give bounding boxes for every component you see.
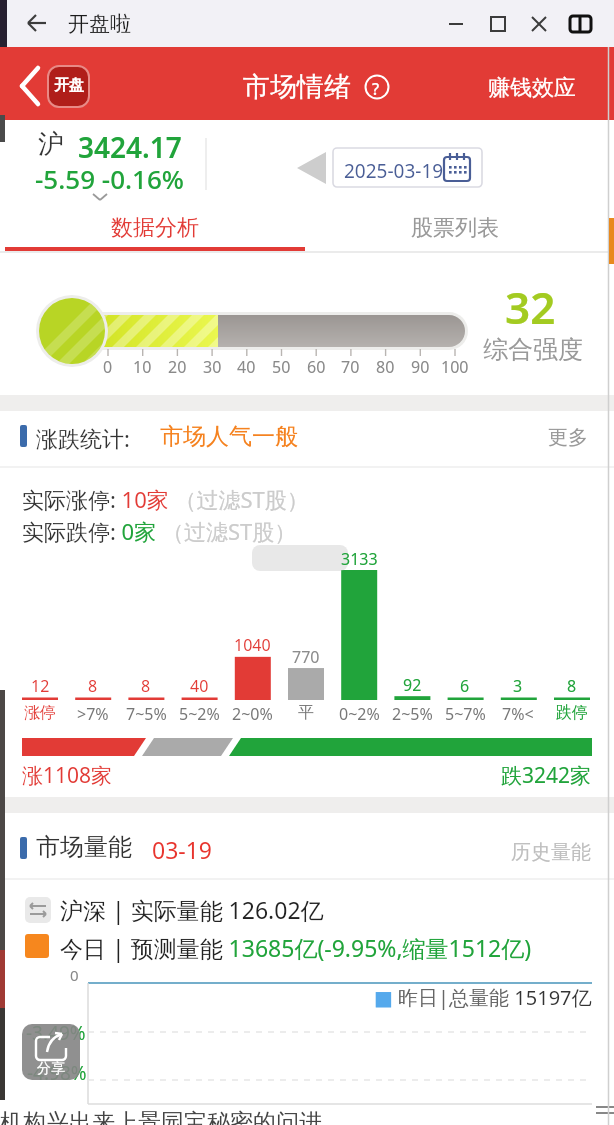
staticText: 涨跌统计: xyxy=(36,423,130,453)
staticText: 跌停 xyxy=(556,703,588,723)
staticText: 市场人气一般 xyxy=(160,422,298,451)
staticText: 40 xyxy=(237,356,256,378)
staticText: 770 xyxy=(292,646,320,668)
staticText: 3 xyxy=(513,675,523,697)
staticText: 市场情绪 xyxy=(243,70,351,104)
staticText: 0 xyxy=(103,356,113,378)
staticText: 1040 xyxy=(234,634,271,656)
staticText: 7%< xyxy=(502,703,534,725)
button[interactable] xyxy=(20,8,56,40)
staticText: 6 xyxy=(460,675,470,697)
button[interactable] xyxy=(290,145,330,190)
staticText: 实际涨停: 10家 （过滤ST股） xyxy=(22,484,309,514)
button[interactable] xyxy=(0,205,307,252)
staticText: 2025-03-19 xyxy=(344,158,444,184)
staticText: 数据分析 xyxy=(111,214,199,242)
staticText: 开盘 xyxy=(54,76,84,95)
staticText: 40 xyxy=(190,675,209,697)
button[interactable] xyxy=(22,1022,78,1082)
staticText: 开盘啦 xyxy=(68,11,131,37)
staticText: ■ 昨日|总量能 15197亿 xyxy=(374,984,592,1011)
staticText: 7~5% xyxy=(126,703,167,725)
button[interactable]: 历史量能 xyxy=(511,840,591,865)
staticText: 50 xyxy=(272,356,291,378)
staticText: 2~0% xyxy=(232,703,273,725)
staticText: >7% xyxy=(77,703,109,725)
staticText: 沪 xyxy=(38,128,64,161)
staticText: 平 xyxy=(298,703,314,723)
staticText: 80 xyxy=(376,356,395,378)
staticText: 涨停 xyxy=(24,703,56,723)
staticText: 综合强度 xyxy=(483,334,583,365)
staticText: 5~7% xyxy=(445,703,486,725)
staticText: 0 xyxy=(70,965,79,985)
button[interactable]: 分享 xyxy=(22,1024,80,1080)
staticText: 8 xyxy=(567,675,577,697)
staticText: 3424.17 xyxy=(78,128,182,166)
staticText: 70 xyxy=(341,356,360,378)
staticText: 32 xyxy=(505,277,556,337)
staticText: 20 xyxy=(168,356,187,378)
staticText: 股票列表 xyxy=(411,214,499,242)
button[interactable] xyxy=(333,148,482,187)
staticText: -3.49% xyxy=(26,1020,86,1046)
staticText: 5~2% xyxy=(179,703,220,725)
staticText: 涨1108家 xyxy=(22,761,113,790)
staticText: 60 xyxy=(307,356,326,378)
staticText: 市场量能 xyxy=(36,832,132,862)
staticText: 12 xyxy=(31,675,50,697)
staticText: 实际跌停: 0家 （过滤ST股） xyxy=(22,516,297,546)
staticText: 8 xyxy=(141,675,151,697)
staticText: 90 xyxy=(411,356,430,378)
staticText: 2~5% xyxy=(392,703,433,725)
staticText: 8 xyxy=(88,675,98,697)
staticText: 3133 xyxy=(341,548,378,570)
staticText: 92 xyxy=(403,674,422,696)
staticText: 赚钱效应 xyxy=(488,74,576,102)
staticText: -4.98% xyxy=(27,1060,87,1086)
staticText: 机构兴出来上景园宝秘密的问进 xyxy=(0,1108,322,1125)
staticText: 03-19 xyxy=(152,834,213,865)
staticText: 沪深 | 实际量能 126.02亿 xyxy=(60,894,324,925)
staticText: 10 xyxy=(133,356,152,378)
staticText: 今日 | 预测量能 13685亿(-9.95%,缩量1512亿) xyxy=(60,932,532,963)
button[interactable] xyxy=(14,60,94,110)
button[interactable] xyxy=(440,10,600,40)
staticText: 0~2% xyxy=(339,703,380,725)
button[interactable]: 更多 xyxy=(548,425,588,450)
staticText: 100 xyxy=(441,356,469,378)
staticText: ? xyxy=(372,78,380,100)
staticText: 分享 xyxy=(37,1060,65,1078)
staticText: -5.59 -0.16% xyxy=(35,161,184,196)
staticText: 30 xyxy=(203,356,222,378)
button[interactable] xyxy=(307,205,614,252)
staticText: 跌3242家 xyxy=(501,761,592,790)
